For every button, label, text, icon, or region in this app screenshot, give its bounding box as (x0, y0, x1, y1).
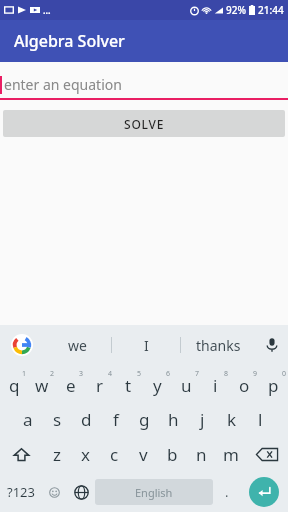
button[interactable]: r (85, 368, 114, 402)
staticText: b (167, 443, 178, 466)
button[interactable]: Voice input (256, 325, 288, 365)
staticText: 2 (50, 369, 55, 379)
staticText: w (35, 374, 49, 397)
staticText: m (223, 443, 239, 466)
button[interactable]: s (43, 402, 72, 436)
staticText: q (9, 374, 20, 397)
button[interactable]: m (216, 436, 245, 472)
button[interactable]: Backspace (245, 436, 288, 472)
button[interactable]: a (13, 402, 43, 436)
button[interactable]: thanks (181, 325, 256, 365)
button[interactable]: x (71, 436, 100, 472)
staticText: x (81, 443, 90, 466)
button[interactable]: y (143, 368, 172, 402)
button[interactable]: enter an equation (0, 68, 288, 100)
button[interactable]: Emoji (41, 472, 68, 512)
staticText: v (139, 443, 148, 466)
button[interactable]: SOLVE (3, 110, 285, 137)
button[interactable]: l (246, 402, 275, 436)
staticText: 1 (22, 369, 27, 379)
staticText: English (135, 485, 173, 500)
staticText: ?123 (7, 483, 35, 501)
staticText: 9 (253, 369, 258, 379)
staticText: f (113, 408, 119, 431)
staticText: Algebra Solver (14, 30, 125, 52)
staticText: thanks (196, 336, 241, 355)
staticText: 4 (108, 369, 113, 379)
staticText: h (168, 408, 179, 431)
staticText: 3 (79, 369, 84, 379)
button[interactable]: e (56, 368, 85, 402)
staticText: n (196, 443, 207, 466)
staticText: g (139, 408, 150, 431)
button[interactable]: z (42, 436, 71, 472)
button[interactable]: b (158, 436, 187, 472)
staticText: we (68, 336, 87, 355)
staticText: 5 (137, 369, 142, 379)
staticText: I (144, 336, 149, 355)
staticText: l (258, 408, 263, 431)
button[interactable]: w (28, 368, 56, 402)
button[interactable]: ?123 (0, 472, 41, 512)
staticText: u (181, 374, 192, 397)
staticText: e (66, 374, 76, 397)
staticText: z (53, 443, 61, 466)
button[interactable]: we (44, 325, 111, 365)
staticText: a (23, 408, 33, 431)
staticText: 6 (166, 369, 171, 379)
button[interactable]: I (112, 325, 180, 365)
staticText: 0 (282, 369, 287, 379)
button[interactable]: Enter (240, 472, 288, 512)
staticText: ... (43, 4, 51, 16)
staticText: p (268, 374, 279, 397)
staticText: y (153, 374, 162, 397)
staticText: s (53, 408, 62, 431)
button[interactable]: c (100, 436, 129, 472)
button[interactable]: g (130, 402, 159, 436)
button[interactable]: Shift (0, 436, 42, 472)
button[interactable]: English (95, 479, 213, 505)
staticText: d (81, 408, 92, 431)
button[interactable]: Change language (68, 472, 95, 512)
staticText: r (96, 374, 104, 397)
staticText: c (110, 443, 119, 466)
staticText: enter an equation (4, 75, 122, 94)
staticText: 92% (226, 3, 246, 17)
staticText: k (227, 408, 237, 431)
button[interactable]: d (72, 402, 101, 436)
button[interactable]: j (188, 402, 217, 436)
button[interactable]: q (0, 368, 28, 402)
button[interactable]: t (114, 368, 143, 402)
staticText: 8 (224, 369, 229, 379)
button[interactable]: v (129, 436, 158, 472)
button[interactable]: i (201, 368, 230, 402)
staticText: j (200, 408, 205, 431)
staticText: 7 (195, 369, 200, 379)
button[interactable]: p (259, 368, 288, 402)
button[interactable]: f (101, 402, 130, 436)
button[interactable]: n (187, 436, 216, 472)
button[interactable]: u (172, 368, 201, 402)
staticText: 21:44 (258, 3, 284, 17)
button[interactable]: . (213, 472, 240, 512)
staticText: t (125, 374, 132, 397)
button[interactable]: h (159, 402, 188, 436)
button[interactable]: k (217, 402, 246, 436)
staticText: SOLVE (124, 116, 165, 132)
staticText: o (239, 374, 250, 397)
staticText: i (213, 374, 218, 397)
staticText: . (225, 483, 229, 501)
button[interactable]: o (230, 368, 259, 402)
button[interactable]: Google search (0, 325, 44, 365)
